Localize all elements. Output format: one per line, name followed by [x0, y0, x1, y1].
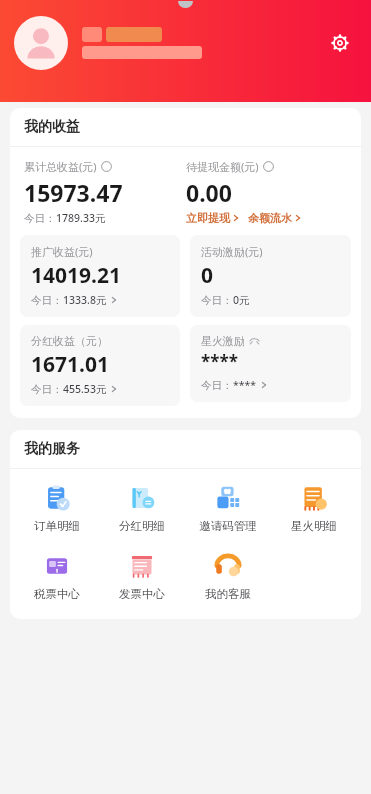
button[interactable]: 分红明细 [99, 479, 185, 537]
staticText: 今日： [31, 294, 63, 307]
staticText: 星火激励 [201, 334, 245, 348]
staticText: 我的服务 [24, 440, 80, 458]
staticText: 0元 [233, 293, 250, 307]
button[interactable]: 发票中心 [99, 547, 185, 605]
staticText: **** [201, 350, 238, 373]
staticText: 1333.8元 [63, 293, 107, 307]
staticText: 邀请码管理 [199, 519, 257, 533]
staticText: 0.00 [186, 177, 232, 208]
staticText: 1789.33元 [56, 211, 106, 225]
staticText: 1671.01 [31, 350, 109, 379]
staticText: 立即提现 [186, 211, 230, 225]
staticText: 14019.21 [31, 261, 121, 290]
staticText: 15973.47 [24, 177, 123, 208]
staticText: **** [233, 378, 257, 392]
button[interactable]: 活动激励(元) [190, 235, 351, 317]
staticText: 余额流水 [248, 211, 292, 225]
staticText: 推广收益(元) [31, 244, 93, 259]
button[interactable]: 税票中心 [14, 547, 99, 605]
button[interactable]: 我的客服 [185, 547, 271, 605]
staticText: 今日： [201, 379, 233, 392]
button[interactable]: Settings [325, 28, 355, 58]
button[interactable]: 分红收益（元） [20, 325, 180, 406]
button[interactable]: 立即提现 [186, 211, 240, 225]
button[interactable]: 累计总收益(元) [24, 159, 186, 225]
staticText: 455.53元 [63, 382, 107, 396]
staticText: 0 [201, 261, 214, 290]
button[interactable]: 星火明细 [271, 479, 357, 537]
staticText: 我的收益 [24, 118, 80, 136]
staticText: 今日： [201, 294, 233, 307]
staticText: 今日： [31, 383, 63, 396]
button[interactable]: Profile avatar [14, 16, 68, 70]
staticText: 分红收益（元） [31, 334, 108, 348]
staticText: 今日： [24, 212, 56, 225]
staticText: 星火明细 [291, 519, 337, 533]
staticText: 待提现金额(元) [186, 159, 259, 174]
staticText: 累计总收益(元) [24, 159, 97, 174]
button[interactable]: 邀请码管理 [185, 479, 271, 537]
staticText: 发票中心 [119, 587, 165, 601]
button[interactable]: 待提现金额(元) [186, 159, 349, 225]
button[interactable]: 订单明细 [14, 479, 99, 537]
button[interactable]: 星火激励 [190, 325, 351, 402]
staticText: 税票中心 [34, 587, 80, 601]
button[interactable]: 推广收益(元) [20, 235, 180, 317]
staticText: 活动激励(元) [201, 244, 263, 259]
staticText: 我的客服 [205, 587, 251, 601]
staticText: 订单明细 [34, 519, 80, 533]
staticText: 分红明细 [119, 519, 165, 533]
button[interactable]: 余额流水 [248, 211, 302, 225]
